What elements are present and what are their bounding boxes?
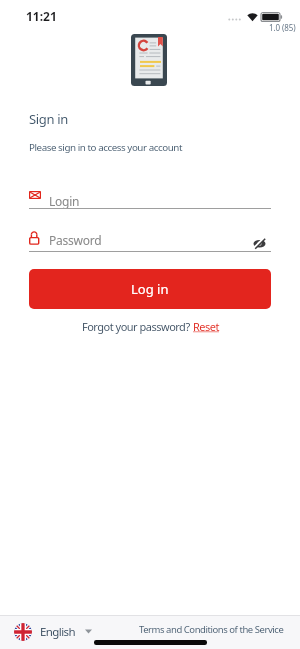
button[interactable]: Reset — [193, 319, 219, 334]
button[interactable]: Password — [29, 228, 271, 252]
staticText: 11:21 — [26, 8, 57, 24]
button[interactable]: Log in — [29, 269, 271, 309]
staticText: Please sign in to access your account — [29, 141, 182, 154]
staticText: Forgot your password? — [82, 319, 193, 334]
staticText: Password — [49, 232, 102, 248]
button[interactable]: Terms and Conditions of the Service — [139, 623, 284, 636]
button[interactable] — [249, 234, 267, 249]
button[interactable]: Login — [29, 185, 271, 209]
staticText: Sign in — [29, 110, 68, 128]
button[interactable]: English — [14, 622, 93, 641]
staticText: English — [40, 624, 75, 640]
staticText: Login — [49, 193, 80, 209]
staticText: 1.0 (85) — [269, 22, 296, 33]
staticText: Log in — [131, 280, 169, 298]
